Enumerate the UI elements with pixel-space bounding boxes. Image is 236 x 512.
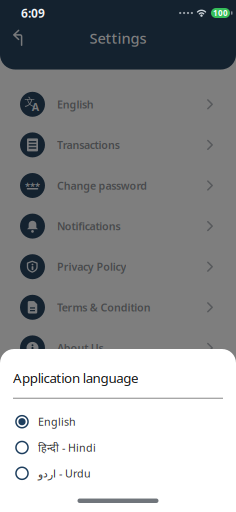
staticText: 文 xyxy=(24,95,35,108)
staticText: हिन्दी - Hindi xyxy=(38,440,96,455)
staticText: Notifications xyxy=(57,219,121,233)
staticText: English xyxy=(57,97,94,111)
staticText: ‎اردو - Urdu xyxy=(38,466,91,480)
staticText: A xyxy=(32,100,39,114)
button[interactable]: Back xyxy=(0,26,33,50)
staticText: Application language xyxy=(13,369,139,387)
button[interactable]: ‎اردو - Urdu xyxy=(0,460,236,486)
staticText: *** xyxy=(25,180,40,192)
staticText: Transactions xyxy=(57,138,120,152)
button[interactable]: 文 xyxy=(0,84,236,125)
button[interactable]: Terms & Condition xyxy=(0,287,236,328)
button[interactable]: Privacy Policy xyxy=(0,246,236,287)
staticText: 100 xyxy=(213,8,228,18)
button[interactable]: Home xyxy=(77,498,158,503)
staticText: Settings xyxy=(89,28,146,48)
button[interactable]: English xyxy=(0,409,236,435)
staticText: About Us xyxy=(57,341,104,355)
button[interactable]: *** xyxy=(0,165,236,206)
staticText: 6:09 xyxy=(21,5,45,21)
button[interactable]: हिन्दी - Hindi xyxy=(0,435,236,460)
staticText: Terms & Condition xyxy=(57,300,151,314)
button[interactable]: About Us xyxy=(0,328,236,368)
button[interactable]: Transactions xyxy=(0,125,236,165)
staticText: English xyxy=(38,415,76,429)
button[interactable]: Notifications xyxy=(0,206,236,246)
staticText: Change password xyxy=(57,178,147,193)
staticText: Privacy Policy xyxy=(57,260,126,274)
